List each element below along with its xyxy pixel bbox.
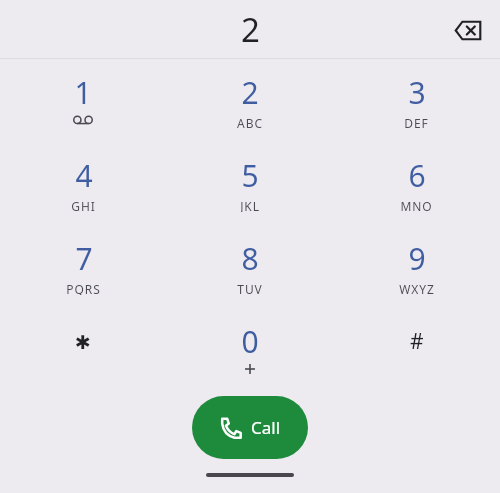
button[interactable]: 6 (333, 142, 500, 225)
button[interactable]: 2 (166, 59, 333, 142)
staticText: MNO (400, 198, 433, 212)
staticText: 6 (408, 155, 426, 196)
button[interactable]: 9 (333, 225, 500, 308)
staticText: 0 (241, 321, 259, 362)
staticText: PQRS (66, 281, 101, 295)
button[interactable]: 0 (166, 308, 333, 391)
staticText: TUV (237, 281, 263, 295)
staticText: Call (251, 416, 281, 439)
button[interactable]: 4 (0, 142, 166, 225)
staticText: WXYZ (399, 281, 435, 295)
button[interactable]: 5 (166, 142, 333, 225)
staticText: 3 (408, 72, 426, 113)
staticText: # (410, 327, 424, 356)
staticText: 2 (241, 72, 259, 113)
button[interactable]: Call (192, 396, 308, 459)
button[interactable]: 7 (0, 225, 166, 308)
staticText: 1 (74, 72, 92, 113)
staticText: GHI (71, 198, 96, 212)
button[interactable]: 1 (0, 59, 166, 142)
staticText: ABC (237, 115, 263, 129)
staticText: 2 (241, 7, 260, 52)
staticText: 9 (408, 238, 426, 279)
staticText: JKL (240, 198, 260, 212)
staticText: DEF (404, 115, 429, 129)
button[interactable]: 8 (166, 225, 333, 308)
button[interactable]: ✱ (0, 308, 166, 391)
button[interactable]: 3 (333, 59, 500, 142)
button[interactable]: Backspace (446, 8, 490, 52)
staticText: ✱ (75, 331, 91, 353)
staticText: 7 (75, 238, 93, 279)
staticText: 5 (241, 155, 259, 196)
button[interactable]: # (333, 308, 500, 391)
staticText: 4 (75, 155, 93, 196)
staticText: 8 (241, 238, 259, 279)
